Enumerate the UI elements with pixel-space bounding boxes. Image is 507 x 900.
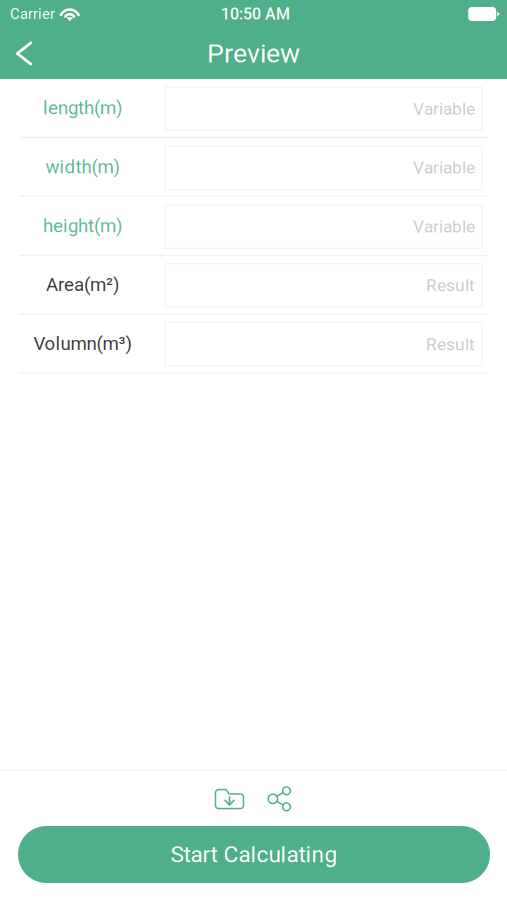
staticText: width(m) (45, 156, 119, 178)
staticText: Area(m²) (46, 274, 119, 296)
staticText: Result (426, 275, 475, 296)
staticText: length(m) (43, 97, 122, 119)
staticText: Carrier (10, 5, 55, 23)
staticText: height(m) (43, 215, 122, 237)
staticText: Result (426, 334, 475, 354)
button[interactable]: Back (0, 28, 48, 78)
staticText: Variable (413, 99, 475, 119)
staticText: Variable (413, 216, 475, 237)
staticText: Volumn(m³) (33, 333, 131, 354)
staticText: 10:50 AM (221, 5, 290, 23)
button[interactable]: Save to folder (207, 777, 251, 821)
button[interactable]: Share (257, 777, 301, 821)
staticText: Variable (413, 157, 475, 178)
staticText: Preview (207, 38, 300, 69)
staticText: Start Calculating (170, 841, 337, 868)
button[interactable]: Start Calculating (18, 826, 490, 883)
